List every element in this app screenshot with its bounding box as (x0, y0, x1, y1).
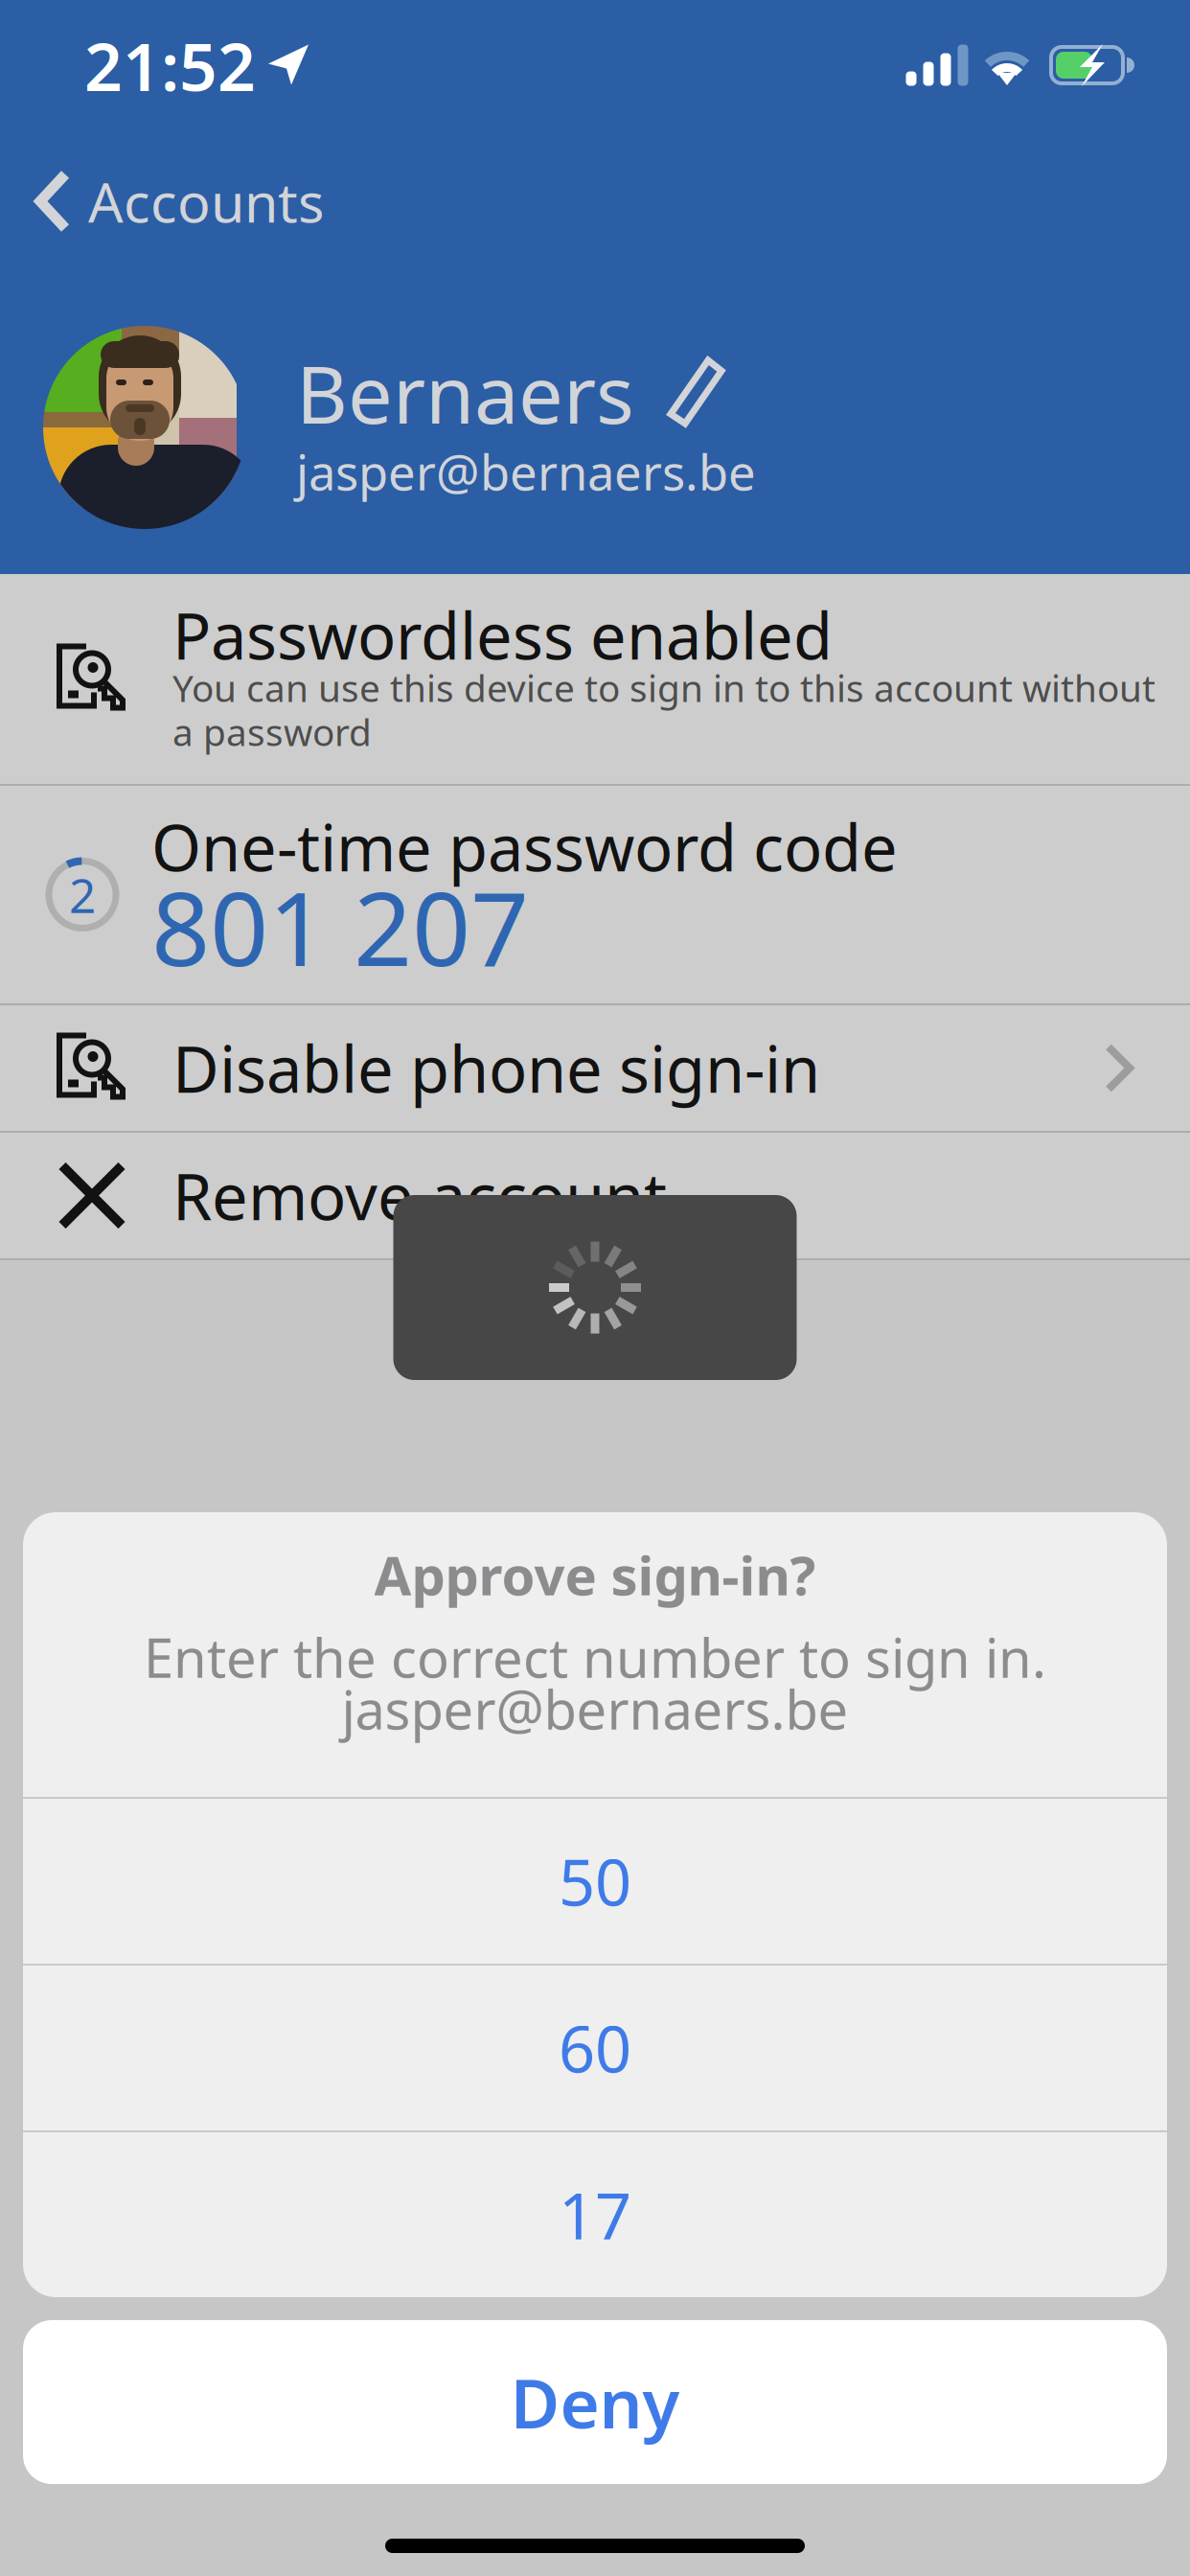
button[interactable]: Edit account name (665, 355, 728, 431)
staticText: 801 207 (151, 858, 529, 994)
staticText: 60 (559, 2006, 631, 2090)
staticText: Accounts (88, 165, 324, 238)
staticText: You can use this device to sign in to th… (172, 663, 1156, 712)
button[interactable]: Disable phone sign-in (0, 1005, 1190, 1131)
button[interactable]: 17 (23, 2132, 1167, 2297)
staticText: Disable phone sign-in (172, 1026, 820, 1110)
button[interactable]: Remove account (0, 1133, 1190, 1258)
staticText: Remove account (172, 1153, 667, 1238)
staticText: 2 (69, 863, 96, 926)
staticText: a password (172, 707, 372, 756)
staticText: jasper@bernaers.be (342, 1673, 848, 1744)
staticText: 50 (559, 1839, 631, 1924)
staticText: Deny (510, 2357, 680, 2447)
button[interactable]: Accounts (0, 161, 349, 241)
staticText: 17 (559, 2172, 631, 2257)
staticText: Approve sign-in? (374, 1539, 816, 1610)
button[interactable]: 50 (23, 1799, 1167, 1964)
staticText: One-time password code (151, 804, 898, 889)
staticText: Passwordless enabled (172, 592, 833, 677)
button[interactable]: Deny (23, 2320, 1167, 2484)
staticText: jasper@bernaers.be (296, 439, 756, 504)
staticText: Enter the correct number to sign in. (144, 1621, 1046, 1693)
staticText: 21:52 (84, 21, 256, 109)
staticText: Bernaers (296, 340, 634, 446)
button[interactable]: 60 (23, 1966, 1167, 2130)
